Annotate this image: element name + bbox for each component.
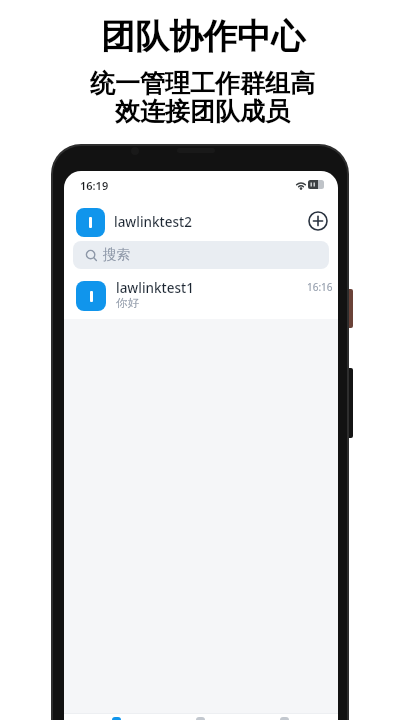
staticText: 你好	[116, 296, 139, 310]
staticText: 统一管理工作群组高 效连接团队成员	[90, 68, 315, 127]
staticText: 搜索	[103, 246, 130, 263]
button[interactable]: 搜索	[73, 241, 329, 269]
staticText: lawlinktest2	[114, 213, 192, 231]
staticText: 16:19	[80, 178, 109, 193]
button[interactable]	[76, 208, 105, 237]
staticText: 16:16	[307, 280, 333, 294]
staticText: lawlinktest1	[116, 279, 194, 297]
button[interactable]: lawlinktest1	[64, 275, 338, 319]
staticText: 团队协作中心	[101, 15, 305, 58]
button[interactable]	[306, 209, 330, 233]
